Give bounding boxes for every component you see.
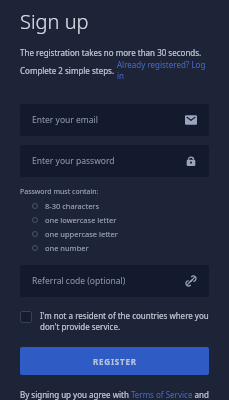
- staticText: one uppercase letter: [45, 229, 118, 239]
- button[interactable]: Enter your password: [20, 145, 209, 177]
- staticText: REGISTER: [93, 356, 137, 367]
- staticText: The registration takes no more than 30 s…: [20, 47, 202, 58]
- staticText: one number: [45, 243, 89, 253]
- button[interactable]: Enter your email: [20, 104, 209, 136]
- staticText: Already registered? Log in: [117, 59, 209, 81]
- staticText: Enter your password: [32, 155, 115, 167]
- button[interactable]: Already registered? Log in: [117, 59, 209, 81]
- other: Referral link: [185, 275, 197, 287]
- staticText: one lowercase letter: [45, 215, 117, 225]
- button[interactable]: I'm not a resident of the countries wher…: [20, 310, 209, 332]
- staticText: Password must contain:: [20, 187, 99, 197]
- button[interactable]: REGISTER: [20, 347, 209, 375]
- staticText: By signing up you agree with Terms of Se…: [20, 389, 209, 400]
- button[interactable]: By signing up you agree with Terms of Se…: [20, 389, 209, 400]
- button[interactable]: Referral code (optional): [20, 265, 209, 297]
- other: Password: [185, 155, 197, 167]
- staticText: 8-30 characters: [45, 201, 100, 211]
- other: Email: [185, 114, 197, 126]
- staticText: Sign up: [20, 8, 89, 35]
- staticText: Complete 2 simple steps.: [20, 65, 117, 76]
- staticText: Referral code (optional): [32, 275, 126, 287]
- staticText: I'm not a resident of the countries wher…: [40, 310, 209, 332]
- staticText: Enter your email: [32, 114, 98, 126]
